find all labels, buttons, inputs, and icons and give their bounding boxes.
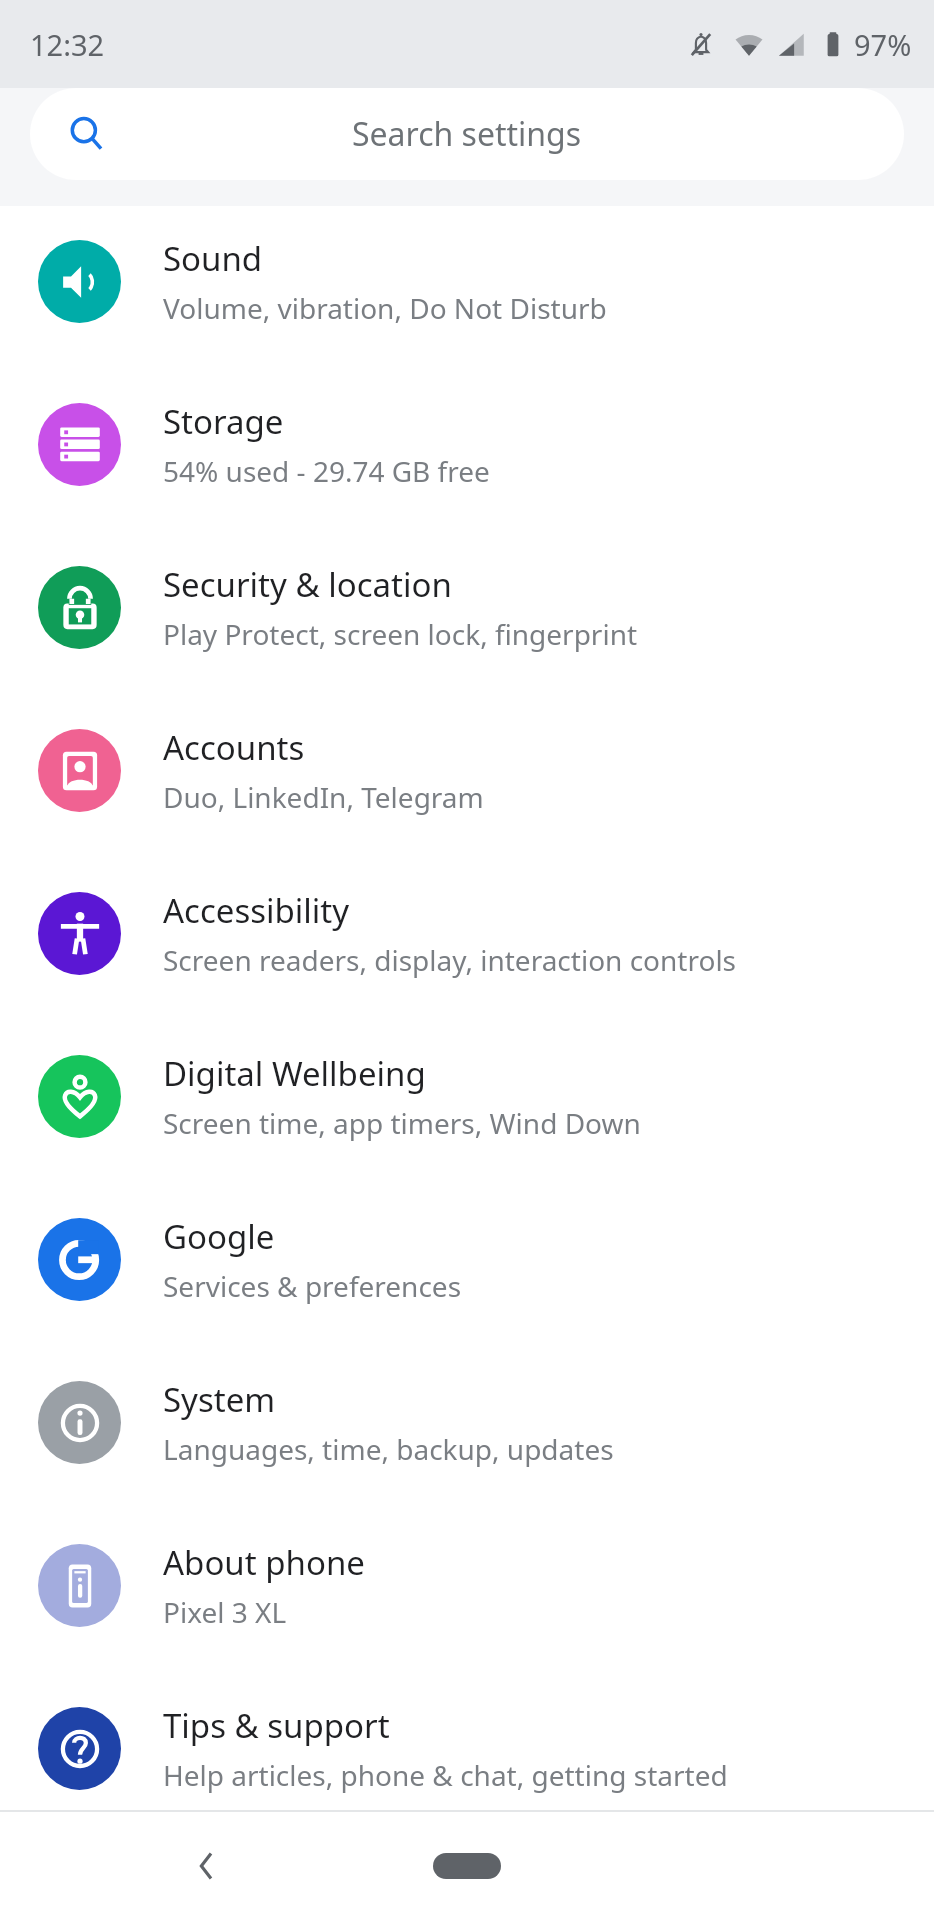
button[interactable]: Accessibility (0, 852, 934, 1015)
button[interactable]: Security & location (0, 526, 934, 689)
staticText: Security & location (163, 562, 452, 607)
staticText: Accessibility (163, 888, 350, 933)
button[interactable]: Tips & support (0, 1667, 934, 1830)
staticText: 54% used - 29.74 GB free (163, 452, 490, 490)
staticText: 12:32 (30, 25, 105, 64)
button[interactable]: Back (160, 1820, 252, 1912)
staticText: Duo, LinkedIn, Telegram (163, 778, 484, 816)
button[interactable]: About phone (0, 1504, 934, 1667)
staticText: Sound (163, 236, 263, 281)
button[interactable]: Digital Wellbeing (0, 1015, 934, 1178)
staticText: About phone (163, 1540, 365, 1585)
staticText: Languages, time, backup, updates (163, 1430, 614, 1468)
staticText: System (163, 1377, 276, 1422)
staticText: Pixel 3 XL (163, 1593, 287, 1631)
staticText: Volume, vibration, Do Not Disturb (163, 289, 607, 327)
button[interactable]: Google (0, 1178, 934, 1341)
staticText: Screen time, app timers, Wind Down (163, 1104, 641, 1142)
staticText: Screen readers, display, interaction con… (163, 941, 737, 979)
staticText: 97% (854, 25, 912, 64)
button[interactable]: Storage (0, 363, 934, 526)
staticText: Storage (163, 399, 284, 444)
button[interactable]: Search settings (30, 88, 904, 180)
staticText: Tips & support (163, 1703, 390, 1748)
button[interactable]: System (0, 1341, 934, 1504)
staticText: Help articles, phone & chat, getting sta… (163, 1756, 728, 1794)
button[interactable]: Home (407, 1831, 527, 1901)
staticText: Accounts (163, 725, 305, 770)
staticText: Digital Wellbeing (163, 1051, 426, 1096)
staticText: Search settings (352, 112, 582, 156)
staticText: Google (163, 1214, 275, 1259)
staticText: Services & preferences (163, 1267, 462, 1305)
button[interactable]: Sound (0, 200, 934, 363)
staticText: Play Protect, screen lock, fingerprint (163, 615, 638, 653)
button[interactable]: Accounts (0, 689, 934, 852)
